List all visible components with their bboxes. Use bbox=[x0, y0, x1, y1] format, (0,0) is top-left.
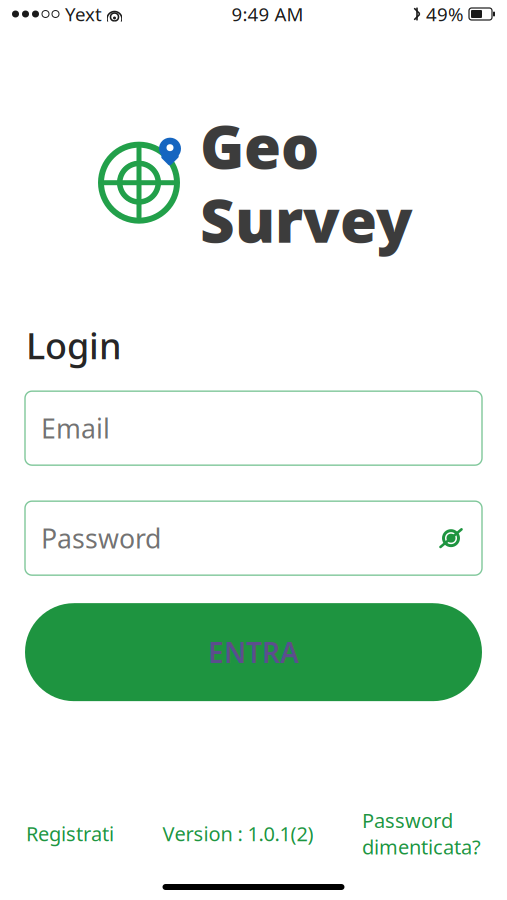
staticText: Geo bbox=[200, 106, 319, 186]
staticText: Yext bbox=[65, 2, 102, 26]
staticText: 9:49 AM bbox=[231, 2, 303, 26]
button[interactable]: Show password bbox=[436, 525, 466, 551]
button[interactable]: Password dimenticata? bbox=[362, 807, 481, 860]
button[interactable]: ENTRA bbox=[25, 603, 482, 701]
staticText: Login bbox=[26, 321, 122, 369]
staticText: Version : 1.0.1(2) bbox=[162, 820, 313, 847]
staticText: Password bbox=[41, 520, 161, 556]
staticText: Email bbox=[41, 410, 110, 446]
staticText: ENTRA bbox=[208, 634, 299, 671]
staticText: Survey bbox=[200, 180, 413, 259]
staticText: 49% bbox=[426, 2, 464, 26]
staticText: Password dimenticata? bbox=[362, 807, 481, 860]
button[interactable]: Email bbox=[25, 391, 482, 465]
button[interactable]: Registrati bbox=[26, 820, 114, 847]
button[interactable]: Password bbox=[25, 501, 482, 575]
staticText: Registrati bbox=[26, 820, 114, 847]
